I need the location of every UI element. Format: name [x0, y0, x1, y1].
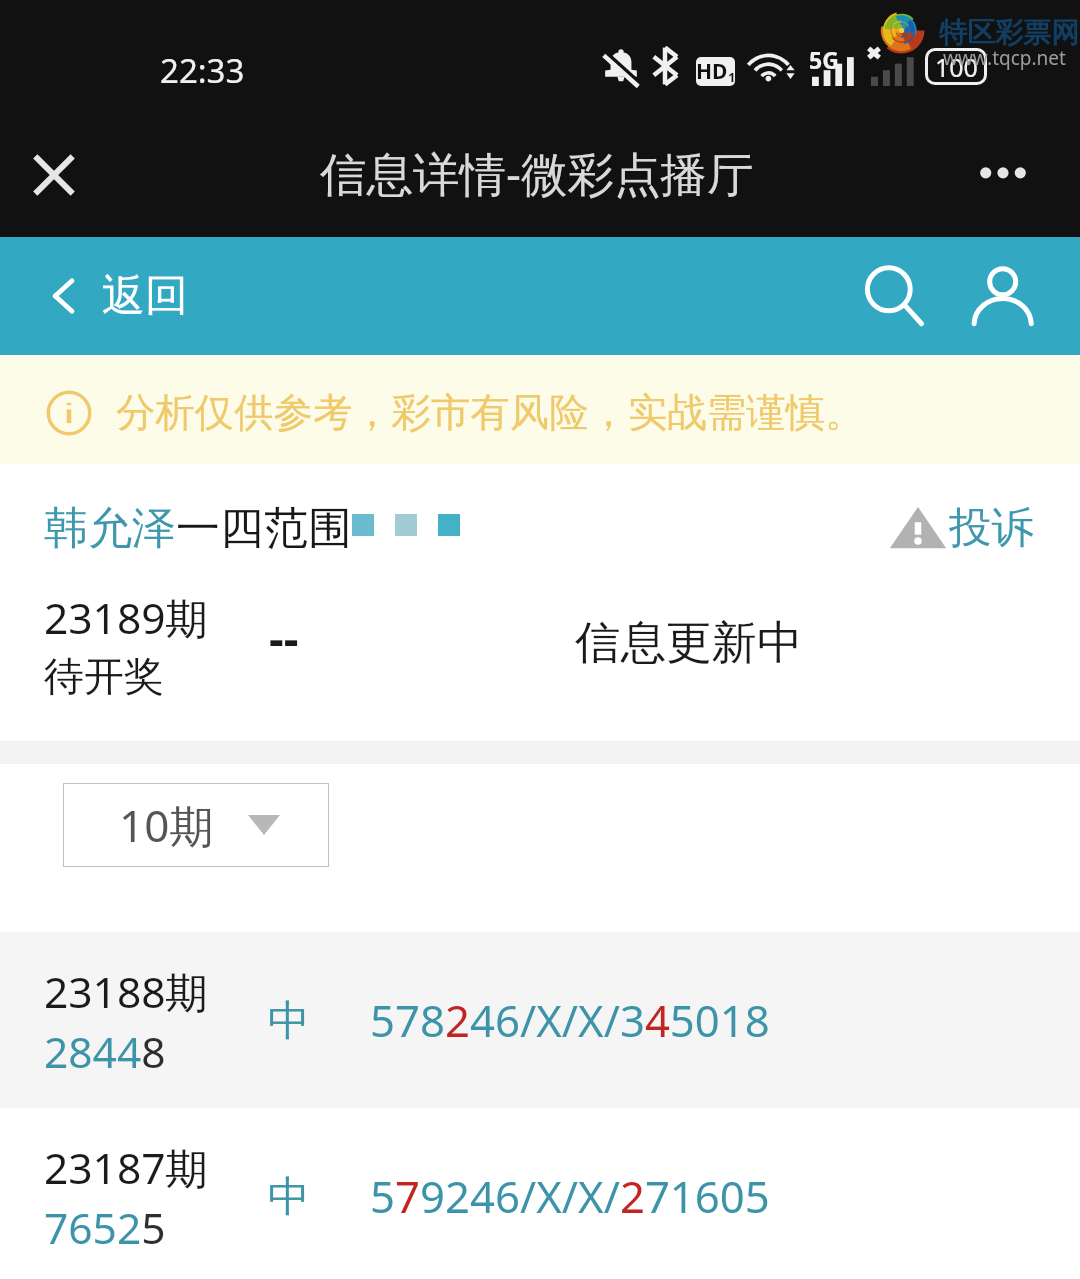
staticText: 23187期	[44, 1139, 209, 1197]
button[interactable]: Account	[959, 254, 1043, 338]
button[interactable]: 返回	[36, 263, 196, 329]
staticText: 中	[268, 1171, 310, 1224]
staticText: 10期	[119, 795, 214, 855]
button[interactable]: Search	[851, 254, 935, 338]
staticText: 1	[728, 68, 735, 86]
staticText: 信息更新中	[575, 614, 803, 671]
staticText: 韩允泽一四范围	[44, 501, 352, 556]
staticText: HD	[696, 57, 728, 86]
button[interactable]: 投诉	[888, 501, 1034, 555]
button[interactable]: 23188期	[0, 932, 1080, 1108]
staticText: 返回	[102, 269, 188, 323]
staticText: 中	[268, 995, 310, 1048]
staticText: 特区彩票网	[939, 15, 1079, 50]
staticText: 待开奖	[44, 651, 164, 701]
staticText: 578246/X/X/345018	[370, 990, 770, 1050]
staticText: 22:33	[160, 48, 245, 93]
staticText: 23188期	[44, 963, 209, 1021]
staticText: 分析仅供参考，彩市有风险，实战需谨慎。	[116, 388, 865, 438]
button[interactable]: 23187期	[0, 1108, 1080, 1279]
staticText: 信息详情-微彩点播厅	[320, 141, 754, 205]
button[interactable]: More options	[967, 139, 1039, 211]
staticText: www.tqcp.net	[943, 45, 1066, 71]
staticText: 76525	[44, 1199, 166, 1257]
button[interactable]: 10期	[63, 783, 329, 867]
staticText: 28448	[44, 1023, 166, 1081]
staticText: 100	[935, 50, 978, 84]
staticText: 5G	[809, 44, 839, 75]
staticText: 投诉	[949, 501, 1034, 555]
staticText: 579246/X/X/271605	[370, 1166, 770, 1226]
button[interactable]: Close	[18, 139, 90, 211]
staticText: 23189期	[44, 589, 209, 647]
staticText: --	[269, 607, 299, 670]
